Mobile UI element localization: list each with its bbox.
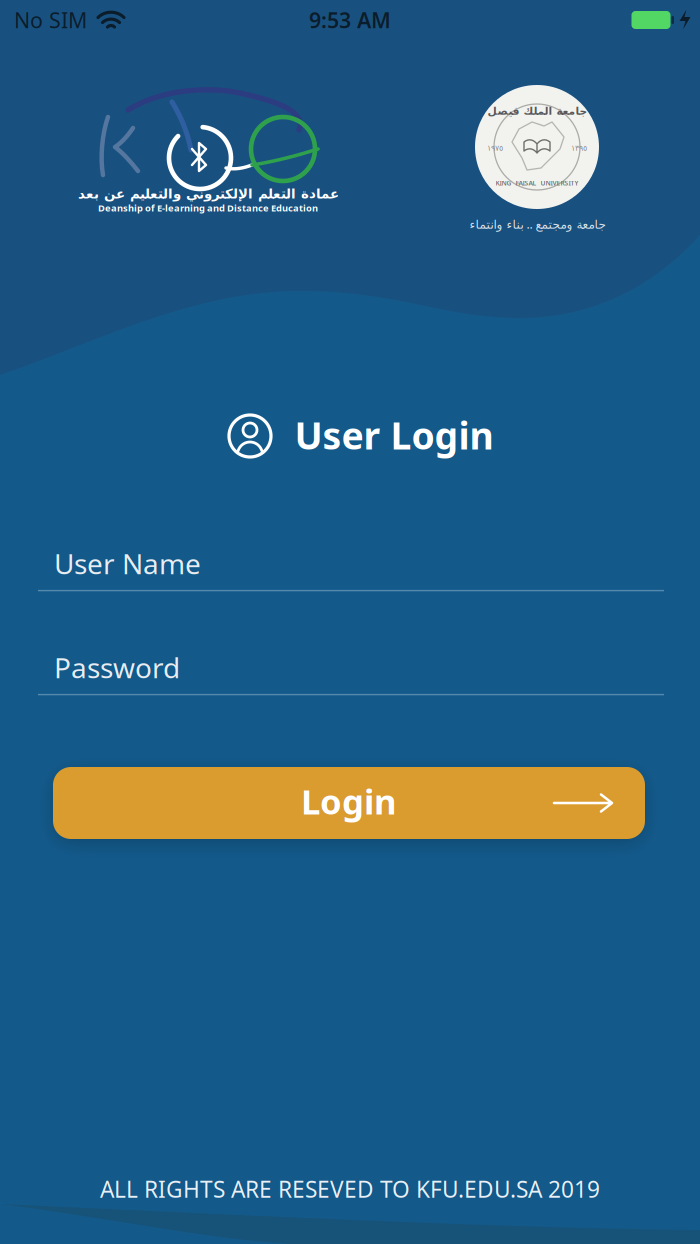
- staticText: عمادة التعلم الإلكتروني والتعليم عن بعد: [77, 186, 338, 201]
- staticText: No SIM: [14, 6, 87, 34]
- staticText: 9:53 AM: [309, 6, 391, 34]
- staticText: KING FAISAL UNIVERSITY: [495, 179, 578, 187]
- staticText: User Name: [54, 545, 201, 582]
- button[interactable]: Password: [38, 649, 664, 695]
- staticText: User Login: [294, 410, 493, 460]
- staticText: Login: [301, 778, 397, 824]
- button[interactable]: Login: [53, 767, 645, 839]
- staticText: جامعة الملك فيصل: [487, 105, 587, 117]
- staticText: ١٩٧٥: [487, 143, 503, 153]
- staticText: ALL RIGHTS ARE RESEVED TO KFU.EDU.SA 201…: [100, 1174, 600, 1204]
- staticText: ١٣٩٥: [571, 143, 587, 153]
- staticText: جامعة ومجتمع .. بناء وانتماء: [469, 216, 605, 232]
- staticText: Deanship of E-learning and Distance Educ…: [98, 202, 318, 214]
- button[interactable]: User Name: [38, 545, 664, 591]
- staticText: Password: [54, 649, 180, 686]
